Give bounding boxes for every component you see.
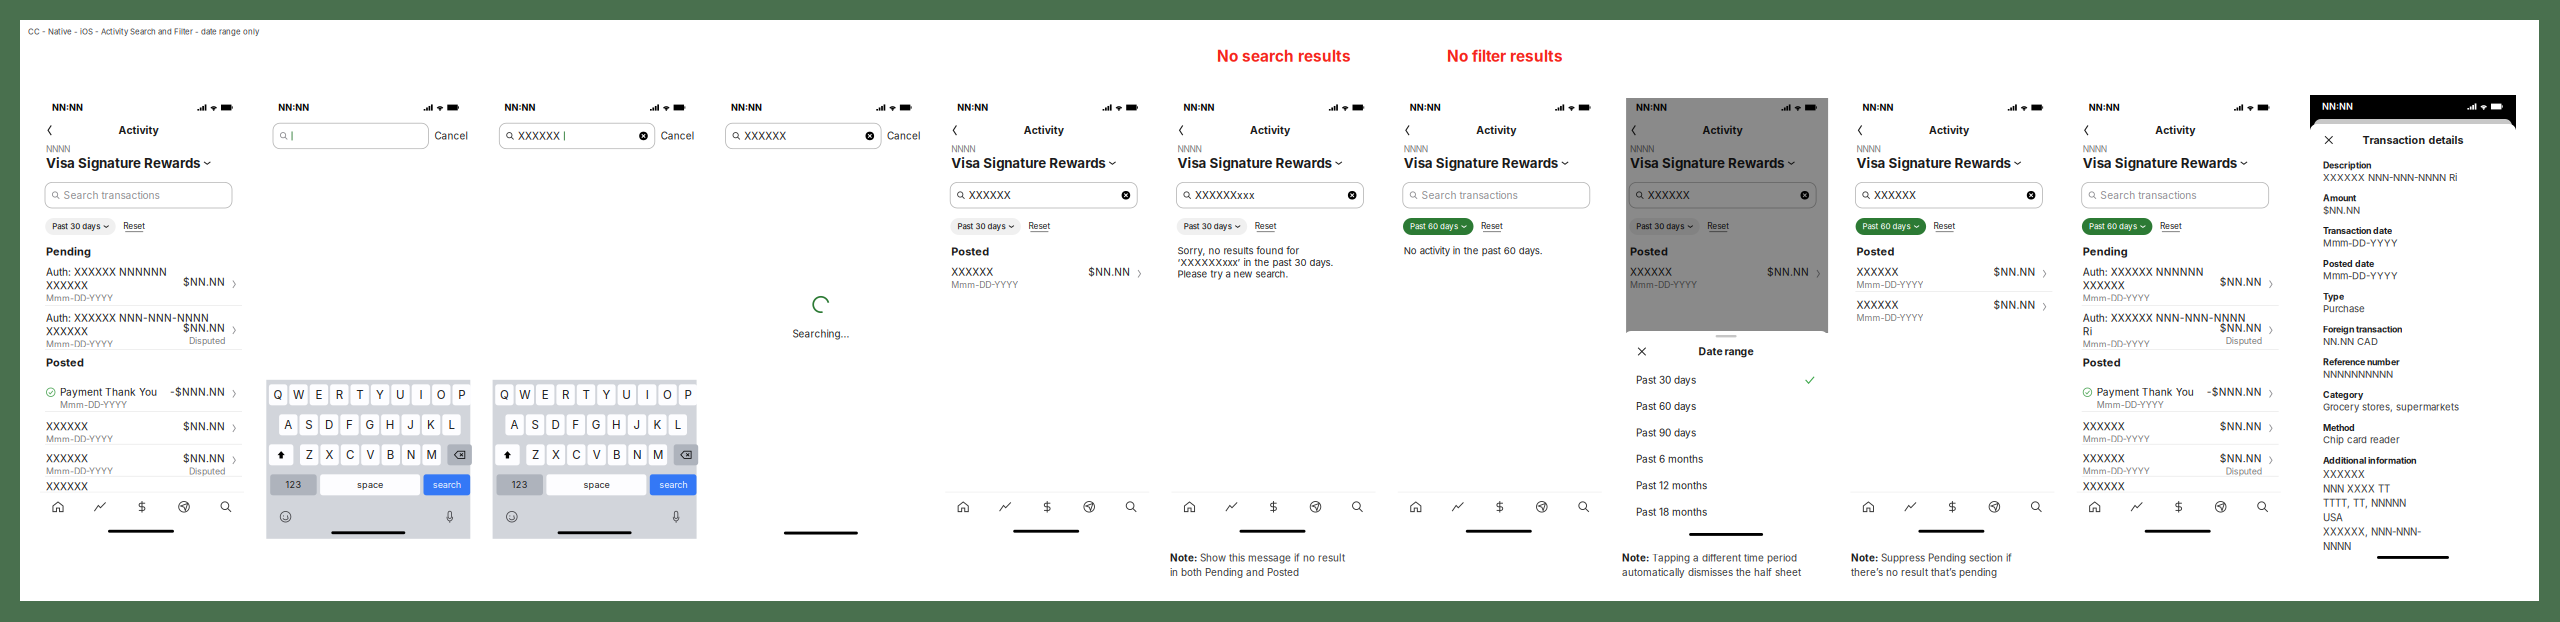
button[interactable]: Back xyxy=(1855,123,1865,137)
button[interactable]: A xyxy=(279,414,297,435)
button[interactable]: Back xyxy=(1403,123,1412,137)
button[interactable]: Past 60 days xyxy=(1856,218,1926,235)
button[interactable]: O xyxy=(658,384,677,405)
button[interactable]: Reset xyxy=(1481,221,1503,232)
button[interactable]: 123 xyxy=(270,474,317,495)
button[interactable]: Spend insights xyxy=(79,499,121,515)
button[interactable]: O xyxy=(432,384,450,405)
button[interactable]: Past 30 days xyxy=(1177,218,1247,235)
button[interactable]: XXXXXX xyxy=(45,419,242,444)
button[interactable]: Home xyxy=(1847,499,1889,515)
button[interactable]: K xyxy=(648,414,667,435)
button[interactable]: Spend insights xyxy=(984,499,1026,515)
button[interactable]: Back xyxy=(45,123,54,137)
button[interactable]: W xyxy=(516,384,534,405)
button[interactable]: Home xyxy=(37,499,79,515)
button[interactable]: Back xyxy=(2082,123,2091,137)
button[interactable]: Past 12 months xyxy=(1636,477,1814,495)
button[interactable]: Q xyxy=(269,384,287,405)
button[interactable]: Payments xyxy=(2158,499,2200,515)
button[interactable]: space xyxy=(320,474,420,495)
button[interactable]: Payment Thank You xyxy=(45,385,242,412)
button[interactable]: Reset xyxy=(123,221,145,232)
button[interactable]: Y xyxy=(597,384,616,405)
button[interactable]: D xyxy=(320,414,338,435)
button[interactable]: M xyxy=(422,444,441,465)
button[interactable]: Home xyxy=(1168,499,1210,515)
button[interactable]: Search xyxy=(1336,499,1378,515)
button[interactable]: X xyxy=(547,444,565,465)
button[interactable]: Q xyxy=(495,384,514,405)
button[interactable]: Auth: XXXXXX NNN-NNN-NNNN xyxy=(2082,311,2279,350)
button[interactable]: J xyxy=(628,414,646,435)
button[interactable]: Dictation xyxy=(446,511,454,523)
button[interactable]: Spend insights xyxy=(1210,499,1252,515)
button[interactable]: Search transactions xyxy=(2082,182,2269,208)
button[interactable]: I xyxy=(412,384,430,405)
button[interactable]: XXXXXX xyxy=(2082,451,2279,476)
button[interactable]: XXXXXX xyxy=(950,265,1147,291)
button[interactable]: Past 30 days xyxy=(1629,218,1700,235)
button[interactable]: Back xyxy=(1176,123,1186,137)
button[interactable]: XXXXXX xyxy=(499,123,655,149)
button[interactable]: P xyxy=(452,384,471,405)
button[interactable]: XXXXXX xyxy=(1629,182,1816,208)
button[interactable]: Locations xyxy=(1521,499,1563,515)
button[interactable]: Spend insights xyxy=(1437,499,1479,515)
button[interactable]: S xyxy=(526,414,544,435)
button[interactable]: Search xyxy=(2242,499,2284,515)
button[interactable]: Payments xyxy=(121,499,163,515)
button[interactable]: Home xyxy=(942,499,984,515)
button[interactable]: Past 60 days xyxy=(2082,218,2152,235)
button[interactable]: Past 30 days xyxy=(45,218,116,235)
button[interactable]: Home xyxy=(1395,499,1437,515)
button[interactable]: Reset xyxy=(1255,221,1277,232)
button[interactable]: Shift xyxy=(495,444,520,465)
button[interactable]: Cancel xyxy=(434,130,467,142)
button[interactable]: Spend insights xyxy=(1889,499,1931,515)
button[interactable]: XXXXXX xyxy=(45,451,242,476)
button[interactable]: S xyxy=(299,414,318,435)
button[interactable]: G xyxy=(361,414,379,435)
button[interactable]: Auth: XXXXXX NNN-NNN-NNNN xyxy=(45,311,242,350)
button[interactable]: Past 30 days xyxy=(1636,371,1814,389)
button[interactable]: Search xyxy=(1563,499,1605,515)
button[interactable]: Emoji xyxy=(506,511,518,522)
button[interactable]: XXXXXX xyxy=(1855,298,2052,324)
button[interactable]: F xyxy=(567,414,585,435)
button[interactable]: Auth: XXXXXX NNNNNN xyxy=(2082,265,2279,306)
button[interactable]: L xyxy=(442,414,461,435)
button[interactable]: Reset xyxy=(2160,221,2182,232)
button[interactable]: Delete xyxy=(674,444,698,465)
button[interactable]: Delete xyxy=(447,444,472,465)
button[interactable]: Locations xyxy=(1973,499,2015,515)
button[interactable]: I xyxy=(638,384,656,405)
button[interactable]: Auth: XXXXXX NNNNNN xyxy=(45,265,242,306)
button[interactable]: V xyxy=(587,444,606,465)
button[interactable]: Reset xyxy=(1707,221,1729,232)
button[interactable]: Payments xyxy=(1479,499,1521,515)
button[interactable]: E xyxy=(310,384,328,405)
button[interactable]: B xyxy=(608,444,626,465)
button[interactable]: Payments xyxy=(1931,499,1973,515)
button[interactable]: Cancel xyxy=(661,130,694,142)
button[interactable]: W xyxy=(289,384,308,405)
button[interactable]: Back xyxy=(950,123,959,137)
button[interactable] xyxy=(273,123,428,149)
button[interactable]: Locations xyxy=(1068,499,1110,515)
button[interactable]: XXXXXX xyxy=(1855,182,2042,208)
button[interactable]: D xyxy=(546,414,565,435)
button[interactable]: Payment Thank You xyxy=(2082,385,2279,412)
button[interactable]: H xyxy=(381,414,399,435)
button[interactable]: H xyxy=(607,414,626,435)
button[interactable]: X xyxy=(320,444,339,465)
button[interactable]: A xyxy=(505,414,524,435)
button[interactable]: 123 xyxy=(496,474,543,495)
button[interactable]: Spend insights xyxy=(2116,499,2158,515)
button[interactable]: Z xyxy=(526,444,545,465)
button[interactable]: Search xyxy=(2015,499,2057,515)
button[interactable]: Dictation xyxy=(672,511,680,523)
button[interactable]: E xyxy=(536,384,554,405)
button[interactable]: Search transactions xyxy=(1403,182,1590,208)
button[interactable]: B xyxy=(382,444,400,465)
